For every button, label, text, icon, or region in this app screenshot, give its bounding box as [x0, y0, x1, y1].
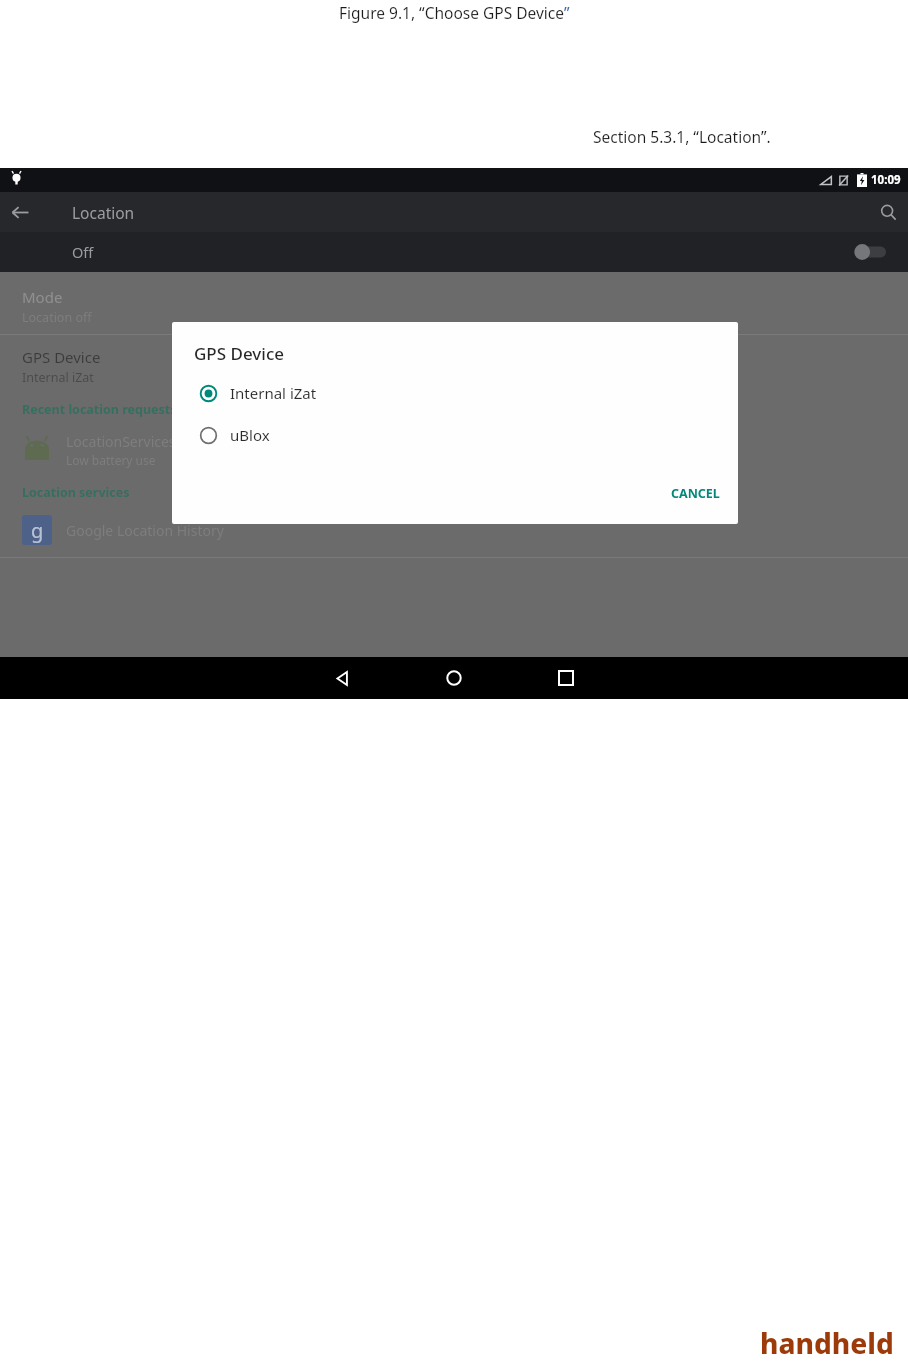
staticText: uBlox	[230, 425, 270, 445]
staticText: GPS Device	[22, 347, 101, 367]
button[interactable]: CANCEL	[653, 477, 738, 510]
staticText: Internal iZat	[230, 383, 317, 403]
staticText: g	[31, 517, 44, 544]
staticText: ”	[564, 2, 570, 23]
staticText: Location services	[22, 484, 130, 501]
button[interactable]: Navigate up	[0, 192, 40, 232]
staticText: Location off	[22, 309, 92, 326]
staticText: Internal iZat	[22, 369, 94, 386]
button[interactable]: Internal iZat	[172, 377, 738, 409]
staticText: Off	[72, 242, 94, 262]
staticText: Section 5.3.1, “Location”.	[593, 126, 771, 147]
button[interactable]: Recent apps	[540, 657, 592, 699]
button[interactable]: GPS Device	[0, 343, 908, 389]
staticText: CANCEL	[671, 485, 720, 502]
button[interactable]: Back	[316, 657, 368, 699]
staticText: Mode	[22, 287, 63, 307]
staticText: 10:09	[871, 172, 901, 188]
staticText: Location	[72, 202, 135, 223]
button[interactable]: uBlox	[172, 419, 738, 451]
staticText: Low battery use	[66, 452, 156, 468]
button[interactable]: Home	[428, 657, 480, 699]
staticText: Recent location requests	[22, 401, 177, 418]
staticText: Google Location History	[66, 521, 224, 540]
staticText: Figure 9.1, “Choose GPS Device	[339, 2, 564, 23]
button[interactable]: g	[0, 509, 908, 551]
staticText: handheld	[760, 1324, 894, 1362]
button[interactable]: Search	[868, 192, 908, 232]
staticText: GPS Device	[194, 342, 284, 365]
button[interactable]: Mode	[0, 282, 908, 330]
button[interactable]: LocationServices	[0, 428, 908, 472]
button[interactable]: Off	[0, 232, 908, 272]
staticText: LocationServices	[66, 432, 176, 451]
